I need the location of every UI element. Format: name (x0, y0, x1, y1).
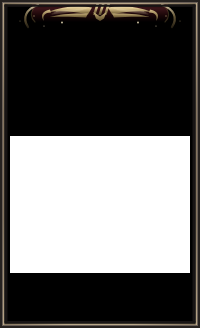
button[interactable]: Content panel (0, 0, 200, 328)
